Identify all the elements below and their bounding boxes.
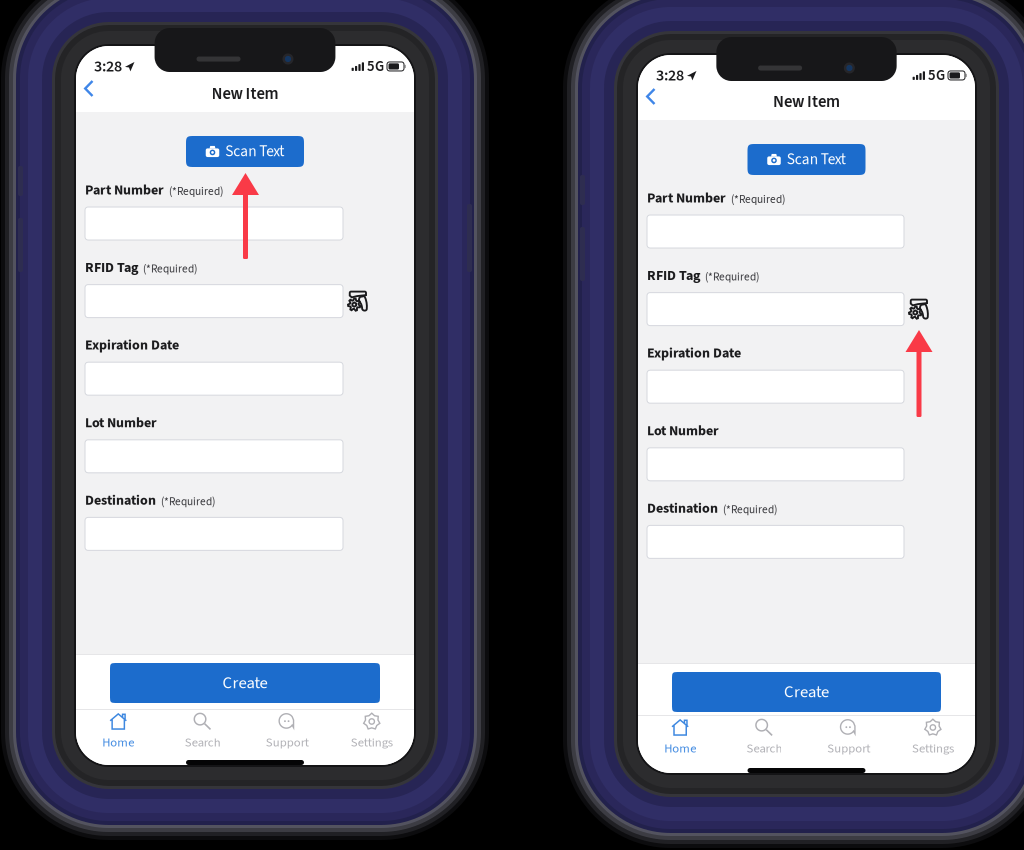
button[interactable]: Scan RFID tag	[347, 289, 372, 314]
button[interactable]: Create	[110, 663, 380, 703]
button[interactable]: Support	[245, 712, 329, 752]
staticText: (*Required)	[705, 269, 759, 285]
button[interactable]: Home	[638, 718, 722, 758]
staticText: Lot Number	[647, 421, 719, 441]
staticText: Scan Text	[787, 149, 846, 170]
staticText: Expiration Date	[647, 343, 741, 363]
button[interactable]: Home	[76, 712, 160, 752]
staticText: (*Required)	[731, 191, 785, 207]
staticText: 3:28	[94, 55, 122, 78]
staticText: Destination	[85, 490, 156, 510]
staticText: Scan Text	[225, 141, 284, 162]
button[interactable]: Back	[645, 86, 675, 116]
staticText: 5G	[367, 56, 384, 77]
staticText: RFID Tag	[85, 258, 138, 278]
staticText: Create	[222, 671, 267, 695]
staticText: Part Number	[85, 180, 164, 200]
button[interactable]: Create	[672, 672, 941, 712]
staticText: Settings	[912, 739, 954, 757]
button[interactable]: Settings	[329, 712, 414, 752]
button[interactable]: Scan Text	[186, 136, 304, 167]
staticText: Part Number	[647, 188, 726, 208]
staticText: (*Required)	[723, 502, 777, 518]
staticText: Support	[827, 739, 870, 757]
staticText: (*Required)	[161, 494, 215, 510]
button[interactable]: Scan RFID tag	[908, 297, 933, 322]
staticText: Search	[746, 739, 782, 757]
button[interactable]: Support	[806, 718, 891, 758]
staticText: New Item	[773, 90, 840, 114]
staticText: Support	[266, 733, 309, 751]
button[interactable]: Search	[722, 718, 806, 758]
button[interactable]: Settings	[891, 718, 975, 758]
button[interactable]: Scan Text	[747, 144, 865, 175]
button[interactable]: Back	[83, 78, 113, 108]
staticText: Home	[664, 739, 696, 757]
staticText: Destination	[647, 498, 718, 518]
staticText: Create	[784, 680, 829, 704]
staticText: New Item	[211, 82, 278, 106]
staticText: Expiration Date	[85, 335, 179, 355]
staticText: Search	[185, 733, 221, 751]
staticText: (*Required)	[143, 261, 197, 277]
staticText: RFID Tag	[647, 266, 700, 286]
staticText: 3:28	[656, 64, 684, 87]
staticText: (*Required)	[169, 183, 223, 199]
staticText: Settings	[351, 733, 393, 751]
staticText: Lot Number	[85, 413, 157, 433]
button[interactable]: Search	[160, 712, 245, 752]
staticText: 5G	[928, 65, 945, 86]
staticText: Home	[102, 733, 134, 751]
